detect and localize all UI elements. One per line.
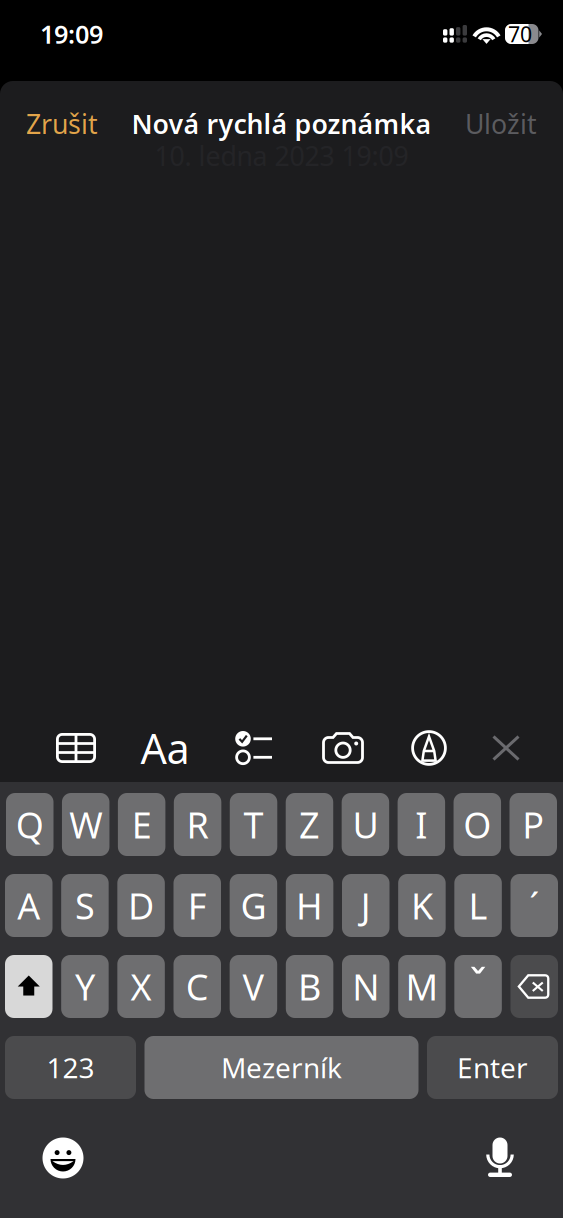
button[interactable]: E [118,793,165,856]
button[interactable] [510,955,558,1018]
button[interactable]: K [398,874,446,937]
button[interactable]: I [398,793,445,856]
staticText: ´ [529,882,539,929]
button[interactable]: F [173,874,221,937]
staticText: Mezerník [221,1049,342,1086]
button[interactable]: Checklist [210,722,298,774]
staticText: T [243,801,263,848]
button[interactable]: S [61,874,109,937]
button[interactable]: G [230,874,277,937]
button[interactable]: Enter [427,1036,558,1099]
button[interactable]: Markup [388,722,470,774]
button[interactable]: 123 [5,1036,136,1099]
staticText: H [296,882,323,929]
staticText: X [131,963,152,1010]
staticText: B [298,963,321,1010]
staticText: O [463,801,491,848]
staticText: M [405,963,438,1010]
staticText: Y [75,963,95,1010]
button[interactable]: R [174,793,221,856]
staticText: C [186,963,209,1010]
button[interactable]: ´ [510,874,558,937]
button[interactable]: Dictate [469,1130,531,1186]
button[interactable]: Text format [120,722,210,774]
button[interactable]: A [5,874,52,937]
staticText: Q [16,801,44,848]
staticText: V [242,963,264,1010]
staticText: S [75,882,95,929]
button[interactable]: Q [6,793,53,856]
button[interactable] [454,955,502,1018]
button[interactable]: M [398,955,446,1018]
staticText: Uložit [465,106,537,141]
staticText: E [132,801,152,848]
staticText: A [17,882,40,929]
staticText: 10. ledna 2023 19:09 [154,138,408,173]
button[interactable]: Zrušit [18,101,106,146]
button[interactable] [5,955,52,1018]
staticText: Zrušit [26,106,98,141]
button[interactable]: B [286,955,333,1018]
button[interactable]: Close keyboard [470,722,542,774]
button[interactable]: X [117,955,165,1018]
staticText: Z [299,801,320,848]
button[interactable]: Table [32,722,120,774]
staticText: L [469,882,488,929]
button[interactable]: H [286,874,333,937]
staticText: P [522,801,544,848]
staticText: 70 [508,20,532,48]
button[interactable]: O [454,793,501,856]
button[interactable]: Uložit [457,101,545,146]
button[interactable]: Camera [298,722,388,774]
staticText: K [411,882,433,929]
staticText: N [352,963,379,1010]
staticText: U [352,801,378,848]
staticText: 19:09 [40,17,103,51]
staticText: F [188,882,207,929]
staticText: W [69,801,102,848]
staticText: 123 [46,1049,94,1086]
button[interactable]: Mezerník [144,1036,418,1099]
button[interactable]: V [230,955,277,1018]
button[interactable]: Emoji [32,1130,94,1186]
staticText: Nová rychlá poznámka [131,106,431,141]
button[interactable]: Z [286,793,333,856]
button[interactable]: T [230,793,277,856]
button[interactable]: P [509,793,557,856]
staticText: D [128,882,154,929]
staticText: I [415,801,427,848]
button[interactable]: D [117,874,165,937]
button[interactable]: W [62,793,109,856]
button[interactable]: N [342,955,389,1018]
staticText: R [187,801,209,848]
button[interactable]: C [173,955,221,1018]
button[interactable]: J [342,874,389,937]
button[interactable]: U [342,793,389,856]
staticText: G [240,882,266,929]
button[interactable]: L [454,874,502,937]
button[interactable]: Y [61,955,109,1018]
staticText: Enter [457,1049,528,1086]
staticText: J [361,882,371,929]
staticText: Aa [140,721,189,775]
